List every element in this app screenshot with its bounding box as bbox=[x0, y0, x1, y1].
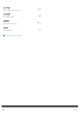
staticText: Sun bbox=[38, 29, 41, 31]
staticText: Mon bbox=[37, 22, 41, 24]
button[interactable]: Privacy bbox=[3, 20, 41, 27]
staticText: Privacy bbox=[3, 20, 9, 22]
staticText: Help bbox=[2, 109, 5, 111]
staticText: Profile details bbox=[3, 16, 13, 18]
staticText: Terms bbox=[72, 109, 78, 111]
staticText: Account bbox=[3, 13, 10, 16]
staticText: Tap a row to continue bbox=[6, 35, 22, 37]
staticText: Data permissions bbox=[3, 23, 17, 25]
staticText: 9:41 bbox=[38, 15, 41, 17]
button[interactable]: Account bbox=[3, 13, 41, 20]
staticText: Manage preferences bbox=[3, 9, 21, 11]
staticText: 12:30 bbox=[37, 8, 41, 11]
button[interactable]: Settings bbox=[3, 7, 41, 13]
button[interactable]: About bbox=[3, 27, 41, 33]
staticText: About bbox=[3, 27, 8, 29]
staticText: Version info bbox=[3, 29, 12, 31]
staticText: Settings bbox=[3, 7, 10, 9]
